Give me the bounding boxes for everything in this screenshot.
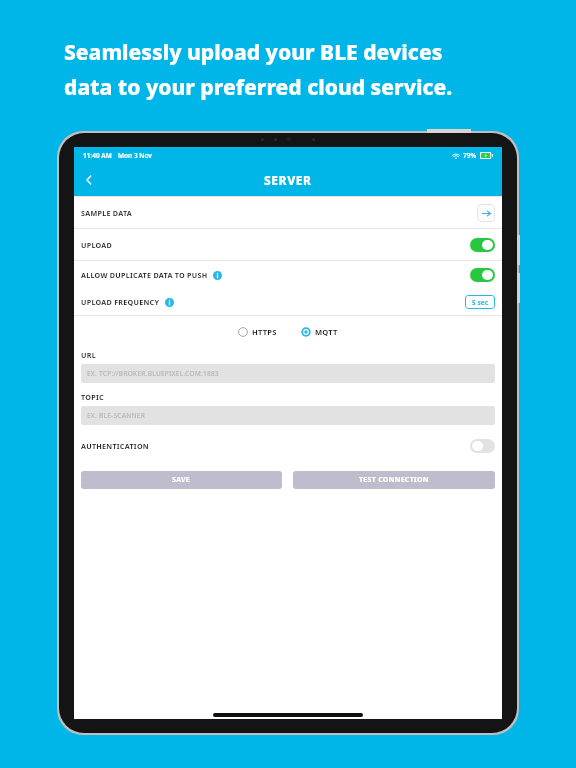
button[interactable]: UPLOAD <box>74 229 502 260</box>
staticText: EX. TCP://BROKER.BLUEPIXEL.COM:1883 <box>87 369 219 378</box>
button[interactable]: UPLOAD FREQUENCY <box>74 289 502 315</box>
button[interactable]: EX. BLE-SCANNER <box>81 406 495 425</box>
button[interactable]: More info <box>165 298 174 307</box>
staticText: 11:40 AM <box>83 151 112 160</box>
button[interactable]: Toggle off <box>470 439 495 453</box>
staticText: EX. BLE-SCANNER <box>87 411 146 420</box>
staticText: SAVE <box>172 475 191 485</box>
button[interactable]: Toggle on <box>470 268 495 282</box>
staticText: AUTHENTICATION <box>81 441 149 451</box>
staticText: TOPIC <box>81 392 104 402</box>
button[interactable]: SAMPLE DATA <box>74 197 502 228</box>
staticText: 79% <box>463 151 477 160</box>
staticText: MQTT <box>315 327 338 337</box>
staticText: SERVER <box>264 172 312 188</box>
staticText: SAMPLE DATA <box>81 208 133 218</box>
button[interactable]: HTTPS <box>236 325 279 339</box>
staticText: TEST CONNECTION <box>359 475 429 485</box>
button[interactable]: 5 sec <box>465 295 495 309</box>
button[interactable]: MQTT <box>299 325 340 339</box>
button[interactable]: ALLOW DUPLICATE DATA TO PUSH <box>74 261 502 289</box>
staticText: UPLOAD FREQUENCY <box>81 297 160 307</box>
staticText: Seamlessly upload your BLE devices <box>64 38 443 67</box>
staticText: data to your preferred cloud service. <box>64 73 453 102</box>
button[interactable]: Open sample data <box>477 204 495 222</box>
staticText: HTTPS <box>252 327 277 337</box>
button[interactable]: SAVE <box>81 471 282 489</box>
button[interactable]: Toggle on <box>470 238 495 252</box>
staticText: 5 sec <box>472 298 489 307</box>
staticText: Mon 3 Nov <box>118 151 152 160</box>
staticText: URL <box>81 350 96 360</box>
button[interactable]: EX. TCP://BROKER.BLUEPIXEL.COM:1883 <box>81 364 495 383</box>
button[interactable]: More info <box>213 271 222 280</box>
button[interactable]: AUTHENTICATION <box>74 435 502 457</box>
staticText: UPLOAD <box>81 240 113 250</box>
button[interactable]: Back <box>74 165 104 195</box>
staticText: ALLOW DUPLICATE DATA TO PUSH <box>81 270 208 280</box>
button[interactable]: TEST CONNECTION <box>293 471 495 489</box>
